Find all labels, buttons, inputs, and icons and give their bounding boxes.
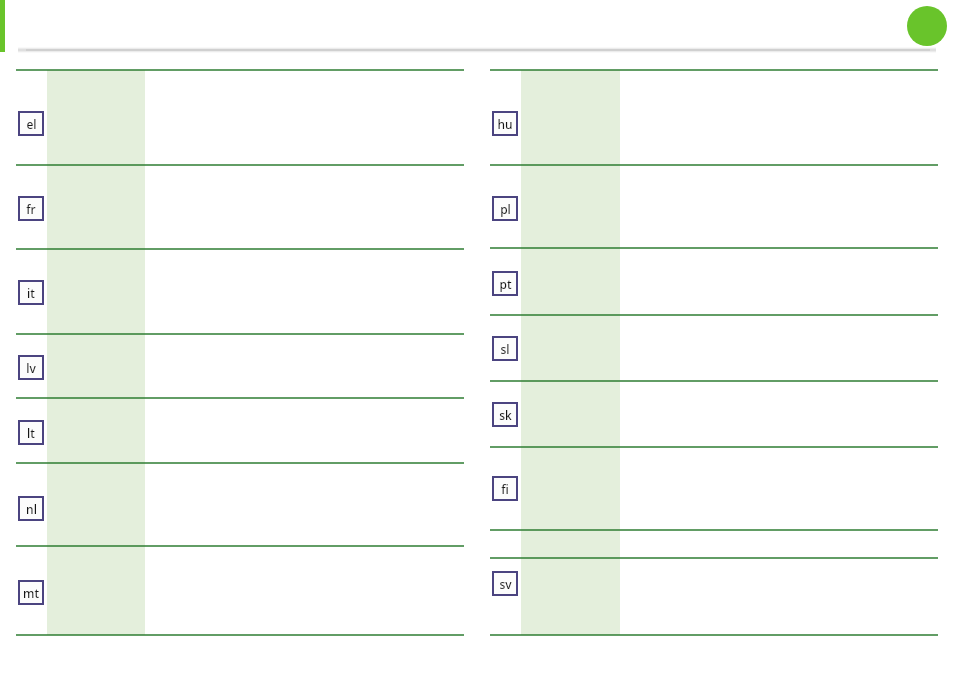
staticText: sl — [500, 341, 510, 357]
staticText: it — [27, 285, 35, 301]
staticText: pt — [499, 276, 512, 292]
button[interactable]: Language code lv — [18, 355, 44, 380]
staticText: fr — [26, 201, 36, 217]
button[interactable]: Language code lt — [18, 420, 44, 445]
button[interactable]: Language code it — [18, 280, 44, 305]
staticText: lv — [26, 360, 36, 376]
staticText: nl — [26, 501, 37, 517]
staticText: sk — [499, 407, 512, 423]
button[interactable]: Language code nl — [18, 496, 44, 521]
staticText: pl — [500, 201, 511, 217]
staticText: el — [26, 116, 37, 132]
staticText: lt — [27, 425, 35, 441]
button[interactable]: Language code fr — [18, 196, 44, 221]
button[interactable]: Language code hu — [492, 111, 518, 136]
button[interactable]: Language code sk — [492, 402, 518, 427]
staticText: sv — [499, 576, 512, 592]
button[interactable]: Language code sv — [492, 571, 518, 596]
staticText: hu — [497, 116, 513, 132]
button[interactable]: Language code pl — [492, 196, 518, 221]
staticText: mt — [23, 585, 39, 601]
button[interactable]: Language code mt — [18, 580, 44, 605]
button[interactable]: Language code fi — [492, 476, 518, 501]
button[interactable]: Language code sl — [492, 336, 518, 361]
button[interactable]: Language code el — [18, 111, 44, 136]
staticText: fi — [501, 481, 509, 497]
button[interactable]: Language code pt — [492, 271, 518, 296]
